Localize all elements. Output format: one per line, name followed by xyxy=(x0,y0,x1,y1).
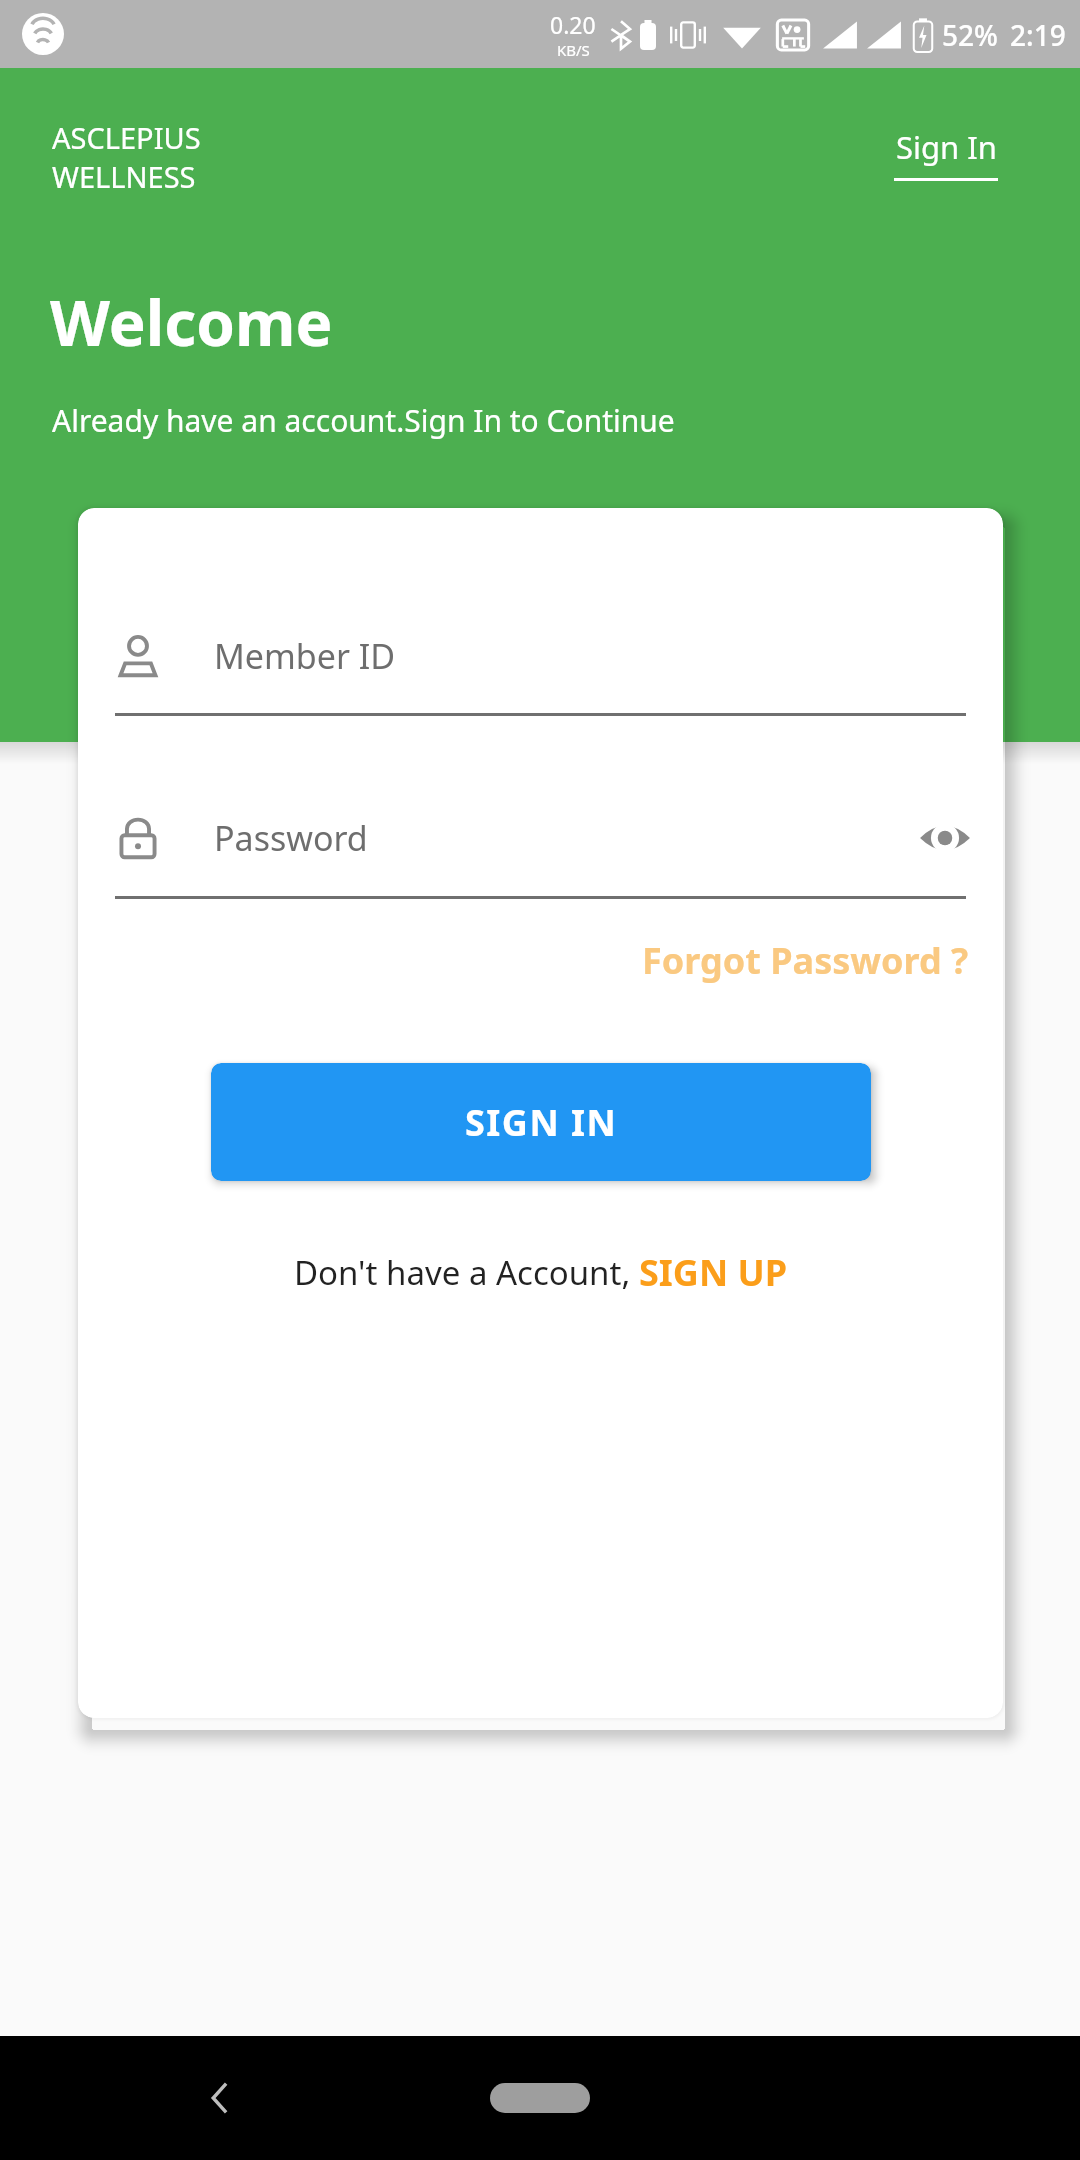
button[interactable]: Back xyxy=(170,2048,270,2148)
staticText: Already have an account.Sign In to Conti… xyxy=(52,400,675,441)
staticText: WELLNESS xyxy=(52,157,196,196)
button[interactable]: Member ID xyxy=(78,598,1003,713)
staticText: Password xyxy=(214,815,368,861)
staticText: Member ID xyxy=(214,633,396,679)
staticText: 52% xyxy=(942,16,998,54)
staticText: 0.20 xyxy=(550,9,596,40)
staticText: KB/S xyxy=(557,40,590,60)
staticText: Welcome xyxy=(50,280,333,364)
staticText: Sign In xyxy=(896,126,997,168)
button[interactable]: SIGN IN xyxy=(211,1063,871,1181)
button[interactable]: Show password xyxy=(909,802,981,874)
staticText: 2:19 xyxy=(1010,16,1066,54)
button[interactable]: SIGN UP xyxy=(639,1248,788,1297)
button[interactable]: Sign In xyxy=(894,126,998,181)
staticText: Forgot Password ? xyxy=(642,936,969,985)
button[interactable]: Password xyxy=(78,780,1003,895)
staticText: SIGN UP xyxy=(639,1248,788,1297)
button[interactable]: Home xyxy=(465,2043,615,2153)
staticText: SIGN IN xyxy=(465,1098,618,1147)
staticText: Don't have a Account, xyxy=(294,1250,639,1295)
button[interactable]: Forgot Password ? xyxy=(636,928,975,993)
staticText: ASCLEPIUS xyxy=(52,118,201,157)
